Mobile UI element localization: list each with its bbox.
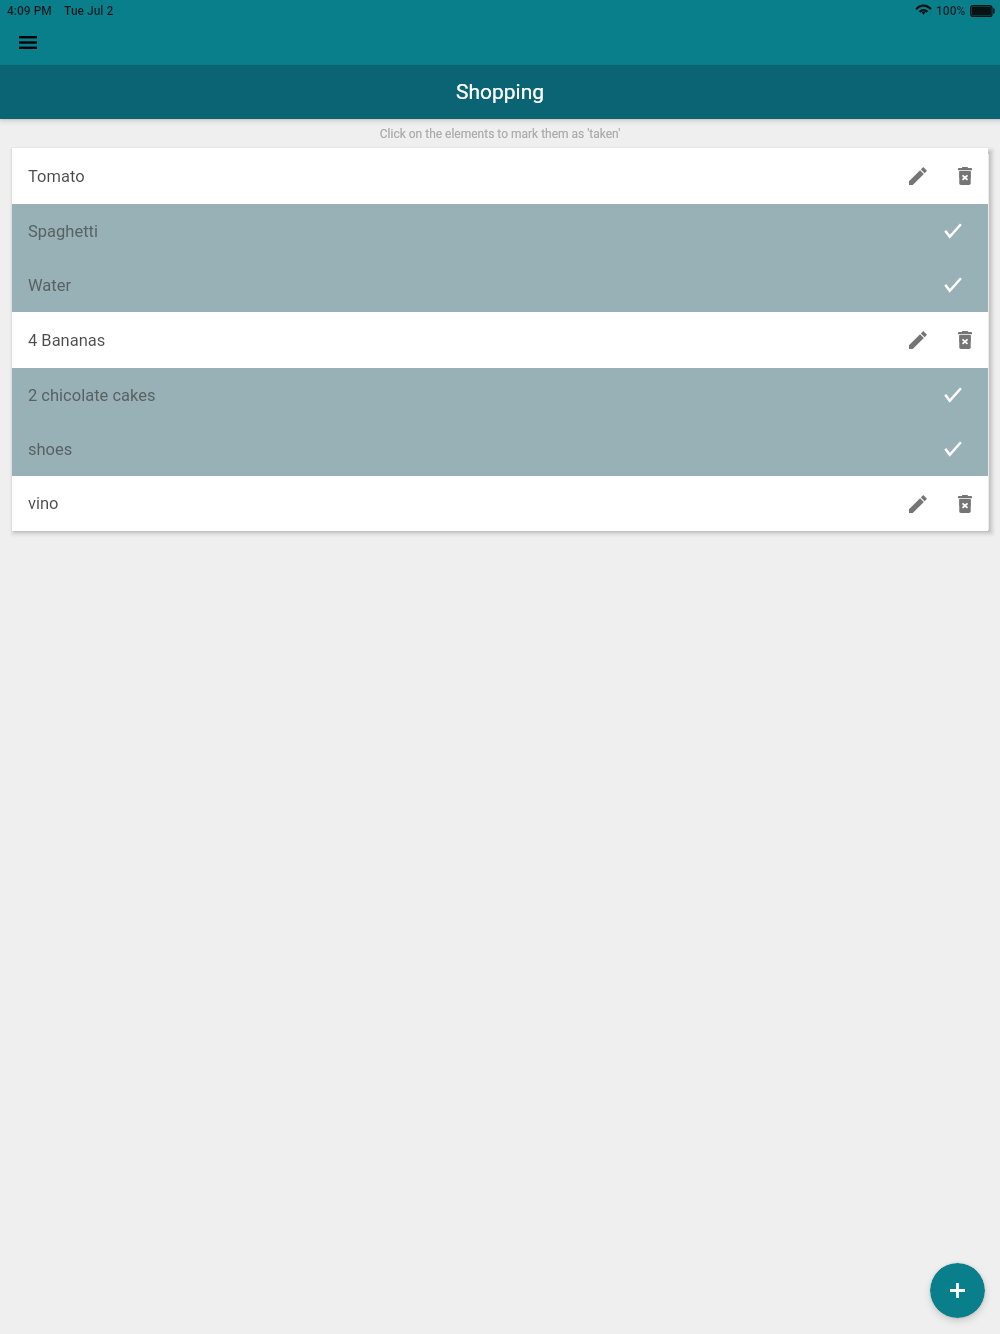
staticText: Tomato [28, 167, 85, 186]
button[interactable]: Edit item [898, 156, 938, 196]
staticText: shoes [28, 440, 73, 459]
button[interactable]: Add new item [930, 1263, 985, 1318]
button[interactable]: Tomato [12, 148, 988, 204]
button[interactable]: Spaghetti [12, 204, 988, 258]
button[interactable]: Delete item [945, 484, 985, 524]
button[interactable]: Edit item [898, 484, 938, 524]
button[interactable]: 4 Bananas [12, 312, 988, 368]
staticText: Spaghetti [28, 222, 98, 241]
staticText: vino [28, 494, 59, 513]
staticText: 4:09 PM [7, 4, 52, 18]
button[interactable]: Open navigation menu [7, 30, 49, 54]
button[interactable]: Delete item [945, 156, 985, 196]
button[interactable]: Mark as not taken [933, 428, 973, 468]
staticText: 4 Bananas [28, 331, 106, 350]
staticText: 2 chicolate cakes [28, 386, 156, 405]
staticText: Click on the elements to mark them as 't… [0, 127, 1000, 141]
button[interactable]: Mark as not taken [933, 210, 973, 250]
button[interactable]: 2 chicolate cakes [12, 368, 988, 422]
button[interactable]: Edit item [898, 320, 938, 360]
button[interactable]: Mark as not taken [933, 264, 973, 304]
button[interactable]: shoes [12, 422, 988, 476]
button[interactable]: Delete item [945, 320, 985, 360]
staticText: Water [28, 276, 72, 295]
staticText: Tue Jul 2 [64, 4, 114, 18]
button[interactable]: vino [12, 476, 988, 531]
staticText: Shopping [456, 80, 545, 105]
button[interactable]: Mark as not taken [933, 374, 973, 414]
staticText: 100% [936, 4, 966, 18]
button[interactable]: Water [12, 258, 988, 312]
